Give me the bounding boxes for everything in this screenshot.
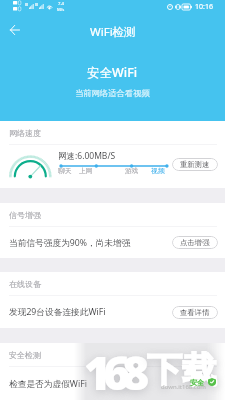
staticText: 上网 (79, 166, 93, 175)
staticText: 7.4 (58, 1, 64, 7)
staticText: 安全检测 (9, 350, 41, 360)
button[interactable]: 查看详情 (172, 306, 218, 319)
staticText: down.it168.com (161, 383, 206, 391)
staticText: 聊天 (58, 166, 72, 175)
staticText: 视频 (151, 166, 165, 175)
staticText: 检查是否为虚假WiFi (9, 378, 218, 390)
staticText: 安全WiFi (87, 64, 138, 81)
staticText: 在线设备 (9, 279, 41, 289)
staticText: 点击增强 (180, 238, 210, 247)
staticText: 当前网络适合看视频 (75, 88, 150, 98)
staticText: 信号增强 (9, 210, 41, 220)
button[interactable]: Back (3, 18, 27, 42)
staticText: 发现29台设备连接此WiFi (9, 306, 172, 318)
staticText: 下载 (147, 348, 217, 392)
staticText: 查看详情 (180, 308, 210, 317)
button[interactable]: 点击增强 (172, 236, 218, 249)
staticText: WiFi检测 (90, 24, 136, 40)
staticText: 168 (84, 341, 142, 400)
staticText: 游戏 (125, 166, 139, 175)
staticText: 当前信号强度为90%，尚未增强 (9, 237, 172, 249)
staticText: M/s (57, 7, 65, 13)
staticText: 10:16 (195, 2, 213, 12)
staticText: 网速:6.00MB/S (58, 150, 116, 162)
staticText: 网络速度 (9, 128, 41, 138)
staticText: 安全 (190, 378, 204, 387)
button[interactable]: 重新测速 (172, 158, 218, 171)
staticText: 重新测速 (180, 160, 210, 169)
